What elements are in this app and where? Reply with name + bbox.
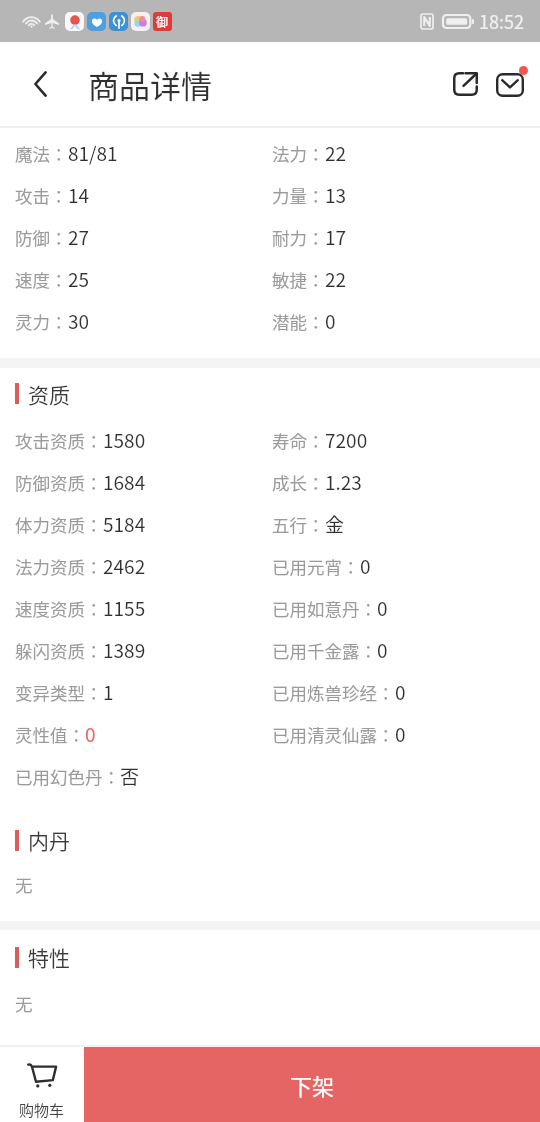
button[interactable]: Back xyxy=(0,42,80,126)
staticText: 1 xyxy=(103,678,114,706)
staticText: 18:52 xyxy=(479,8,524,34)
staticText: 2462 xyxy=(103,552,146,580)
staticText: 0 xyxy=(325,307,336,335)
staticText: 0 xyxy=(85,720,96,748)
staticText: 变异类型： xyxy=(15,680,103,705)
staticText: 30 xyxy=(68,307,90,335)
staticText: 攻击资质： xyxy=(15,428,103,453)
staticText: 购物车 xyxy=(19,1099,65,1121)
button[interactable]: Share xyxy=(441,61,487,107)
staticText: 内丹 xyxy=(28,825,70,855)
staticText: 耐力： xyxy=(272,225,325,250)
staticText: 速度资质： xyxy=(15,596,103,621)
staticText: 0 xyxy=(377,636,388,664)
staticText: 灵性值： xyxy=(15,722,85,747)
staticText: 躲闪资质： xyxy=(15,638,103,663)
staticText: 0 xyxy=(360,552,371,580)
staticText: 特性 xyxy=(28,942,70,972)
staticText: 25 xyxy=(68,265,90,293)
staticText: 攻击： xyxy=(15,183,68,208)
staticText: 否 xyxy=(120,762,140,790)
staticText: 成长： xyxy=(272,470,325,495)
button[interactable]: 下架 xyxy=(84,1047,540,1122)
staticText: 81/81 xyxy=(68,139,118,167)
staticText: 0 xyxy=(377,594,388,622)
staticText: 22 xyxy=(325,265,347,293)
staticText: 体力资质： xyxy=(15,512,103,537)
staticText: 法力： xyxy=(272,141,325,166)
staticText: 0 xyxy=(395,720,406,748)
staticText: 1684 xyxy=(103,468,146,496)
staticText: 防御： xyxy=(15,225,68,250)
staticText: 22 xyxy=(325,139,347,167)
staticText: 已用如意丹： xyxy=(272,596,377,621)
staticText: 0 xyxy=(395,678,406,706)
staticText: 御 xyxy=(156,13,169,30)
staticText: 已用元宵： xyxy=(272,554,360,579)
staticText: 力量： xyxy=(272,183,325,208)
button[interactable]: 购物车 xyxy=(0,1047,84,1122)
staticText: 寿命： xyxy=(272,428,325,453)
staticText: 魔法： xyxy=(15,141,68,166)
staticText: 已用千金露： xyxy=(272,638,377,663)
staticText: 已用幻色丹： xyxy=(15,764,120,789)
staticText: 1580 xyxy=(103,426,146,454)
staticText: 商品详情 xyxy=(88,62,212,107)
staticText: 敏捷： xyxy=(272,267,325,292)
staticText: 已用清灵仙露： xyxy=(272,722,395,747)
staticText: 资质 xyxy=(28,379,70,409)
staticText: 金 xyxy=(325,510,345,538)
staticText: 7200 xyxy=(325,426,368,454)
button[interactable]: Messages xyxy=(488,61,534,107)
staticText: 下架 xyxy=(290,1069,335,1101)
staticText: 无 xyxy=(15,991,33,1016)
staticText: 灵力： xyxy=(15,309,68,334)
staticText: 1155 xyxy=(103,594,146,622)
staticText: 防御资质： xyxy=(15,470,103,495)
staticText: 无 xyxy=(15,872,33,897)
staticText: 13 xyxy=(325,181,347,209)
staticText: 已用炼兽珍经： xyxy=(272,680,395,705)
staticText: 1389 xyxy=(103,636,146,664)
staticText: 27 xyxy=(68,223,90,251)
staticText: 1.23 xyxy=(325,468,362,496)
staticText: 法力资质： xyxy=(15,554,103,579)
staticText: 潜能： xyxy=(272,309,325,334)
staticText: 14 xyxy=(68,181,90,209)
staticText: 5184 xyxy=(103,510,146,538)
staticText: 17 xyxy=(325,223,347,251)
staticText: 五行： xyxy=(272,512,325,537)
staticText: 速度： xyxy=(15,267,68,292)
